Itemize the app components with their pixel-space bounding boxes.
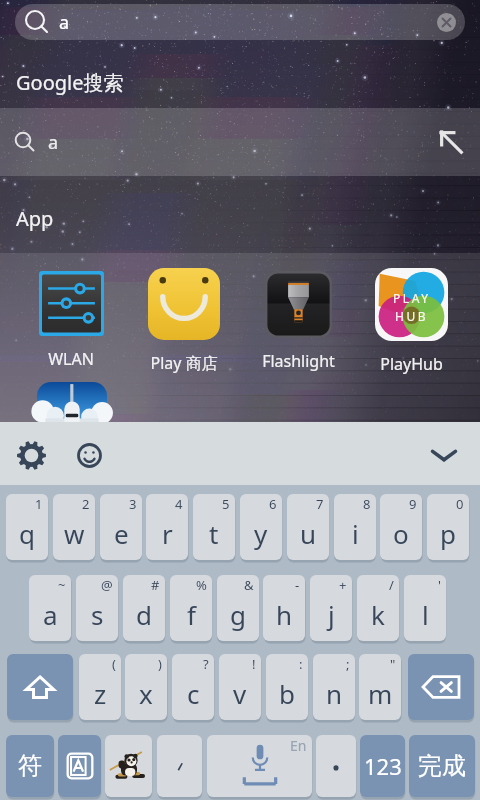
button[interactable]: 7 bbox=[287, 494, 329, 560]
button[interactable]: WLAN bbox=[12, 263, 130, 373]
staticText: 1 bbox=[35, 495, 43, 513]
staticText: + bbox=[339, 576, 347, 594]
staticText: ( bbox=[112, 655, 116, 673]
button[interactable]: Comma bbox=[157, 735, 202, 797]
staticText: 2 bbox=[82, 495, 90, 513]
button[interactable]: # bbox=[123, 575, 165, 641]
button[interactable]: 符 bbox=[6, 735, 54, 797]
staticText: y bbox=[254, 516, 268, 551]
staticText: ~ bbox=[58, 576, 66, 594]
button[interactable]: Hide keyboard bbox=[422, 433, 466, 477]
button[interactable]: 6 bbox=[240, 494, 282, 560]
staticText: i bbox=[352, 516, 359, 551]
staticText: 完成 bbox=[418, 751, 466, 781]
staticText: Play 商店 bbox=[150, 352, 218, 374]
staticText: a bbox=[43, 597, 58, 632]
staticText: HUB bbox=[395, 308, 429, 324]
staticText: ! bbox=[252, 655, 256, 673]
staticText: x bbox=[139, 676, 153, 711]
button[interactable]: Insert suggestion bbox=[434, 125, 468, 159]
staticText: s bbox=[91, 597, 104, 632]
staticText: h bbox=[276, 597, 293, 632]
staticText: # bbox=[151, 576, 160, 594]
staticText: 0 bbox=[456, 495, 464, 513]
button[interactable]: ) bbox=[125, 654, 167, 720]
button[interactable] bbox=[13, 374, 131, 484]
staticText: Flashlight bbox=[262, 350, 335, 372]
staticText: a bbox=[59, 10, 70, 35]
staticText: " bbox=[390, 655, 396, 673]
button[interactable]: Clear bbox=[437, 13, 456, 32]
button[interactable]: 0 bbox=[427, 494, 469, 560]
button[interactable]: @ bbox=[76, 575, 118, 641]
button[interactable]: ' bbox=[404, 575, 446, 641]
staticText: g bbox=[230, 597, 246, 632]
staticText: q bbox=[19, 516, 35, 551]
button[interactable]: 4 bbox=[146, 494, 188, 560]
button[interactable]: a bbox=[0, 108, 480, 176]
staticText: a bbox=[48, 130, 59, 155]
staticText: PlayHub bbox=[380, 353, 443, 375]
button[interactable]: Emoji bbox=[67, 433, 111, 477]
staticText: u bbox=[300, 516, 317, 551]
button[interactable]: PLAY bbox=[352, 260, 470, 370]
button[interactable]: Space bbox=[207, 735, 312, 797]
staticText: b bbox=[279, 676, 295, 711]
staticText: 7 bbox=[316, 495, 324, 513]
button[interactable]: & bbox=[217, 575, 259, 641]
button[interactable]: a bbox=[15, 4, 465, 40]
staticText: k bbox=[371, 597, 385, 632]
button[interactable]: 8 bbox=[334, 494, 376, 560]
staticText: ' bbox=[438, 576, 441, 594]
staticText: 6 bbox=[269, 495, 277, 513]
button[interactable]: Shift bbox=[7, 654, 73, 720]
button[interactable]: ~ bbox=[29, 575, 71, 641]
button[interactable]: Play 商店 bbox=[125, 260, 243, 370]
staticText: 123 bbox=[364, 751, 402, 781]
staticText: PLAY bbox=[393, 290, 431, 306]
staticText: f bbox=[187, 597, 196, 632]
staticText: l bbox=[422, 597, 429, 632]
staticText: ) bbox=[158, 655, 162, 673]
button[interactable]: Settings bbox=[9, 433, 53, 477]
staticText: Google搜索 bbox=[16, 69, 124, 96]
button[interactable]: / bbox=[357, 575, 399, 641]
button[interactable]: - bbox=[263, 575, 305, 641]
staticText: 9 bbox=[409, 495, 417, 513]
button[interactable]: ! bbox=[219, 654, 261, 720]
button[interactable]: Theme bbox=[105, 735, 152, 797]
staticText: 5 bbox=[222, 495, 230, 513]
staticText: % bbox=[196, 576, 207, 594]
staticText: d bbox=[136, 597, 152, 632]
button[interactable]: ; bbox=[313, 654, 355, 720]
button[interactable]: ? bbox=[172, 654, 214, 720]
button[interactable]: Flashlight bbox=[239, 263, 357, 373]
staticText: @ bbox=[101, 576, 113, 594]
button[interactable]: + bbox=[310, 575, 352, 641]
staticText: j bbox=[328, 597, 335, 632]
button[interactable]: 2 bbox=[53, 494, 95, 560]
button[interactable]: Backspace bbox=[408, 654, 474, 720]
staticText: - bbox=[295, 576, 300, 594]
staticText: w bbox=[64, 516, 85, 551]
button[interactable]: 5 bbox=[193, 494, 235, 560]
button[interactable]: ( bbox=[79, 654, 121, 720]
staticText: z bbox=[94, 676, 107, 711]
button[interactable]: Period bbox=[316, 735, 356, 797]
staticText: : bbox=[299, 655, 303, 673]
staticText: En bbox=[290, 736, 307, 755]
button[interactable]: 9 bbox=[380, 494, 422, 560]
button[interactable]: Input language bbox=[58, 735, 101, 797]
staticText: v bbox=[233, 676, 247, 711]
button[interactable]: 完成 bbox=[409, 735, 475, 797]
button[interactable]: 123 bbox=[360, 735, 405, 797]
button[interactable]: : bbox=[266, 654, 308, 720]
staticText: c bbox=[187, 676, 200, 711]
button[interactable]: 1 bbox=[6, 494, 48, 560]
staticText: t bbox=[209, 516, 219, 551]
button[interactable]: " bbox=[359, 654, 401, 720]
button[interactable]: % bbox=[170, 575, 212, 641]
staticText: n bbox=[326, 676, 343, 711]
button[interactable]: 3 bbox=[100, 494, 142, 560]
staticText: r bbox=[162, 516, 173, 551]
